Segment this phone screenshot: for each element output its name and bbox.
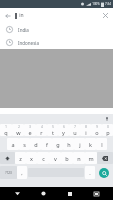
staticText: 7:34 — [105, 2, 111, 6]
staticText: Indonesia — [18, 40, 39, 46]
staticText: 9 — [96, 125, 98, 129]
button[interactable]: 5 — [47, 124, 58, 136]
staticText: t — [52, 129, 54, 136]
button[interactable]: 7 — [69, 124, 80, 136]
button[interactable]: Indonesia — [0, 36, 113, 49]
staticText: u — [73, 129, 77, 136]
staticText: g — [56, 141, 60, 148]
button[interactable]: Shift — [0, 152, 15, 164]
staticText: q — [4, 129, 8, 136]
button[interactable]: 4 — [36, 124, 47, 136]
button[interactable]: m — [85, 152, 97, 164]
staticText: o — [95, 129, 99, 136]
staticText: 1 — [5, 125, 7, 129]
button[interactable]: Back — [8, 187, 26, 200]
button[interactable]: x — [26, 152, 37, 164]
staticText: 2 — [18, 125, 20, 129]
button[interactable]: b — [61, 152, 73, 164]
button[interactable]: v — [49, 152, 61, 164]
button[interactable]: 0 — [102, 124, 113, 136]
staticText: i — [85, 129, 87, 136]
button[interactable]: g — [52, 138, 63, 150]
button[interactable]: 9 — [91, 124, 102, 136]
button[interactable]: k — [85, 138, 96, 150]
staticText: m — [88, 155, 94, 162]
staticText: a — [11, 141, 15, 148]
button[interactable]: d — [30, 138, 41, 150]
button[interactable]: c — [37, 152, 49, 164]
staticText: y — [62, 129, 65, 136]
button[interactable]: . — [85, 166, 95, 179]
staticText: s — [23, 141, 26, 148]
staticText: n — [77, 155, 81, 162]
button[interactable]: 6 — [58, 124, 69, 136]
button[interactable]: j — [74, 138, 85, 150]
staticText: 5 — [52, 125, 54, 129]
staticText: j — [79, 141, 81, 148]
button[interactable]: Clear — [98, 8, 113, 23]
button[interactable]: 8 — [80, 124, 91, 136]
staticText: b — [65, 155, 69, 162]
staticText: z — [19, 155, 22, 162]
button[interactable]: Screenshot — [87, 187, 105, 200]
staticText: e — [28, 129, 32, 136]
staticText: c — [42, 155, 45, 162]
staticText: ?123 — [5, 171, 12, 175]
button[interactable]: h — [63, 138, 74, 150]
button[interactable]: s — [19, 138, 30, 150]
staticText: h — [67, 141, 71, 148]
staticText: r — [40, 129, 43, 136]
staticText: , — [21, 169, 23, 176]
button[interactable]: n — [73, 152, 85, 164]
staticText: v — [54, 155, 57, 162]
staticText: 4 — [41, 125, 43, 129]
staticText: 3 — [29, 125, 31, 129]
button[interactable]: , — [17, 166, 27, 179]
staticText: w — [16, 129, 21, 136]
staticText: 7 — [74, 125, 76, 129]
staticText: x — [30, 155, 33, 162]
button[interactable]: Home — [34, 187, 52, 200]
staticText: l — [101, 141, 103, 148]
button[interactable]: l — [96, 138, 107, 150]
button[interactable]: f — [41, 138, 52, 150]
button[interactable]: Symbols — [0, 166, 17, 179]
staticText: f — [46, 141, 48, 148]
staticText: p — [106, 129, 110, 136]
staticText: k — [89, 141, 92, 148]
staticText: 0 — [107, 125, 109, 129]
button[interactable]: Voice input — [102, 114, 111, 123]
staticText: 100% — [92, 2, 100, 6]
button[interactable]: Back — [0, 8, 15, 23]
button[interactable]: Search — [96, 166, 112, 179]
button[interactable]: z — [15, 152, 26, 164]
staticText: 8 — [85, 125, 87, 129]
button[interactable]: Backspace — [97, 152, 113, 164]
button[interactable]: 1 — [0, 124, 12, 136]
staticText: d — [34, 141, 38, 148]
button[interactable]: a — [7, 138, 19, 150]
button[interactable]: 3 — [24, 124, 36, 136]
staticText: 6 — [63, 125, 65, 129]
button[interactable]: Recents — [61, 187, 79, 200]
staticText: in — [19, 12, 24, 19]
button[interactable]: India — [0, 23, 113, 36]
staticText: . — [89, 169, 91, 176]
button[interactable]: 2 — [12, 124, 24, 136]
staticText: India — [18, 27, 29, 33]
